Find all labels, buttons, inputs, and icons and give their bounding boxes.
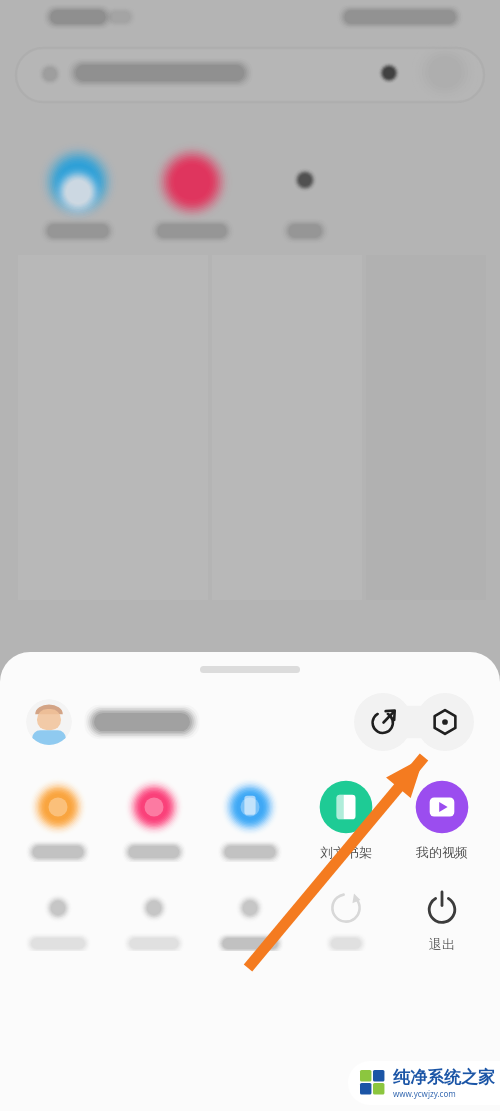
staticText: www.ycwjzy.com — [393, 1088, 456, 1099]
staticText: 退出 — [429, 936, 455, 952]
staticText: 刘文书架 — [320, 844, 372, 860]
staticText: 我的视频 — [416, 844, 468, 860]
button[interactable]: 我的视频 — [394, 777, 490, 862]
button[interactable]: Exit — [394, 888, 490, 952]
button[interactable]: Share — [354, 693, 412, 751]
button[interactable] — [106, 777, 202, 862]
button[interactable]: 刘文书架 — [298, 777, 394, 862]
button[interactable]: Settings — [416, 693, 474, 751]
button[interactable] — [298, 888, 394, 951]
button[interactable]: Profile avatar — [26, 699, 72, 745]
button[interactable] — [202, 888, 298, 951]
button[interactable] — [202, 777, 298, 862]
button[interactable] — [10, 888, 106, 951]
staticText: 纯净系统之家 — [393, 1067, 495, 1088]
button[interactable] — [10, 777, 106, 862]
button[interactable] — [106, 888, 202, 951]
